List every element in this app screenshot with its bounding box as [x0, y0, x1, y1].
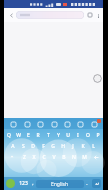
- button[interactable]: W: [13, 130, 23, 140]
- button[interactable]: Backspace: [89, 152, 103, 162]
- staticText: F: [42, 143, 45, 150]
- button[interactable]: K: [78, 141, 88, 151]
- button[interactable]: [16, 11, 84, 19]
- button[interactable]: U: [63, 130, 73, 140]
- staticText: U: [66, 132, 70, 139]
- staticText: X: [32, 154, 36, 161]
- button[interactable]: T: [43, 130, 53, 140]
- staticText: J: [72, 143, 74, 150]
- button[interactable]: Keyboard badge: [97, 119, 101, 123]
- staticText: M: [82, 154, 87, 161]
- button[interactable]: Theme: [9, 120, 17, 128]
- button[interactable]: Enter: [92, 179, 101, 188]
- staticText: Z: [23, 154, 26, 161]
- staticText: V: [52, 154, 56, 161]
- button[interactable]: E: [23, 130, 33, 140]
- staticText: Q: [7, 132, 11, 139]
- staticText: C: [42, 154, 46, 161]
- button[interactable]: D: [28, 141, 38, 151]
- button[interactable]: ,: [30, 177, 36, 190]
- button[interactable]: R: [33, 130, 43, 140]
- button[interactable]: Scroll control: [93, 74, 102, 83]
- button[interactable]: Emoji: [23, 120, 31, 128]
- staticText: E: [27, 132, 30, 139]
- button[interactable]: O: [83, 130, 93, 140]
- button[interactable]: B: [59, 152, 69, 162]
- button[interactable]: N: [69, 152, 79, 162]
- button[interactable]: C: [39, 152, 49, 162]
- button[interactable]: X: [29, 152, 39, 162]
- button[interactable]: G: [48, 141, 58, 151]
- button[interactable]: Z: [19, 152, 29, 162]
- button[interactable]: Space: [36, 180, 84, 188]
- button[interactable]: Y: [53, 130, 63, 140]
- button[interactable]: Sticker: [36, 120, 44, 128]
- staticText: P: [96, 132, 100, 139]
- staticText: A: [11, 143, 15, 150]
- staticText: ,: [32, 180, 34, 187]
- button[interactable]: I: [73, 130, 83, 140]
- staticText: D: [31, 143, 35, 150]
- staticText: W: [16, 132, 21, 139]
- staticText: .: [86, 180, 88, 187]
- button[interactable]: F: [38, 141, 48, 151]
- staticText: N: [72, 154, 76, 161]
- staticText: Y: [57, 132, 60, 139]
- button[interactable]: J: [68, 141, 78, 151]
- button[interactable]: Q: [4, 130, 13, 140]
- button[interactable]: Back: [6, 10, 16, 20]
- button[interactable]: S: [18, 141, 28, 151]
- staticText: 123: [19, 180, 28, 187]
- staticText: I: [77, 132, 79, 139]
- staticText: R: [36, 132, 40, 139]
- button[interactable]: Tabs: [86, 11, 94, 19]
- button[interactable]: 123: [18, 177, 28, 190]
- button[interactable]: A: [8, 141, 18, 151]
- button[interactable]: L: [88, 141, 98, 151]
- button[interactable]: Emoji: [6, 179, 15, 188]
- staticText: English: [51, 181, 69, 188]
- staticText: T: [47, 132, 50, 139]
- button[interactable]: Settings: [90, 120, 98, 128]
- button[interactable]: P: [93, 130, 103, 140]
- button[interactable]: Clipboard: [76, 120, 84, 128]
- button[interactable]: M: [79, 152, 89, 162]
- staticText: S: [22, 143, 25, 150]
- staticText: B: [62, 154, 66, 161]
- staticText: G: [51, 143, 55, 150]
- button[interactable]: .: [84, 177, 90, 190]
- button[interactable]: Translate: [50, 120, 58, 128]
- staticText: O: [86, 132, 90, 139]
- button[interactable]: More options: [94, 11, 102, 19]
- button[interactable]: Voice: [63, 120, 71, 128]
- button[interactable]: Shift: [4, 152, 19, 162]
- button[interactable]: H: [58, 141, 68, 151]
- staticText: L: [92, 143, 95, 150]
- staticText: H: [61, 143, 65, 150]
- button[interactable]: V: [49, 152, 59, 162]
- staticText: K: [81, 143, 85, 150]
